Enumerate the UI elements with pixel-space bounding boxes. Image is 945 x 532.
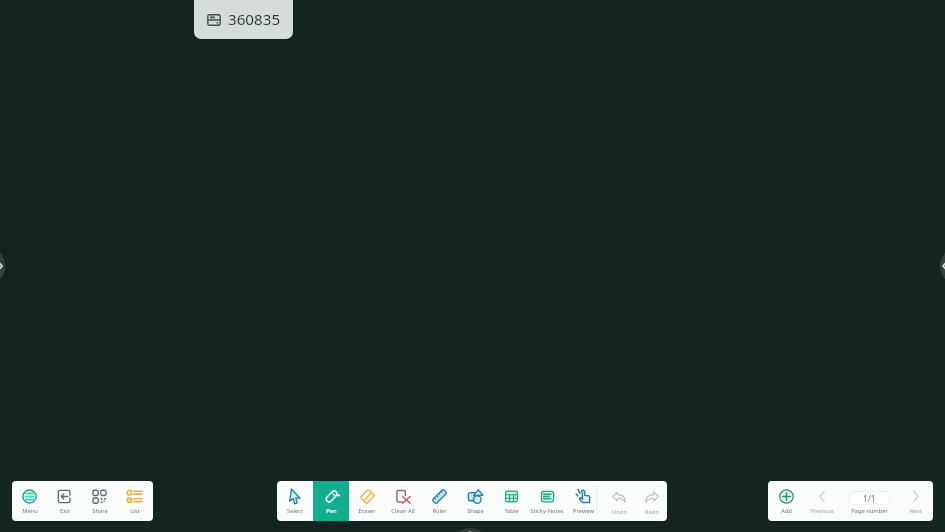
button[interactable]: Show more tools	[450, 528, 490, 532]
button[interactable]: Preview	[565, 481, 601, 521]
staticText: Table	[504, 507, 519, 515]
staticText: Add	[781, 507, 792, 515]
button[interactable]: Previous	[804, 481, 840, 521]
button[interactable]: Undo	[601, 481, 637, 521]
button[interactable]: Expand left panel	[0, 246, 5, 286]
staticText: Eraser	[358, 507, 376, 515]
button[interactable]: Table	[493, 481, 529, 521]
staticText: List	[130, 507, 140, 515]
button[interactable]: Eraser	[349, 481, 385, 521]
button[interactable]: Redo	[637, 481, 667, 521]
staticText: 360835	[228, 9, 281, 30]
staticText: Share	[92, 507, 108, 515]
button[interactable]: List	[117, 481, 152, 521]
staticText: Select	[287, 507, 303, 515]
button[interactable]: Add	[768, 481, 804, 521]
button[interactable]: Shape	[457, 481, 493, 521]
staticText: Redo	[645, 508, 659, 516]
button[interactable]: Next	[898, 481, 933, 521]
staticText: 1/1	[863, 493, 876, 504]
button[interactable]: Pen	[313, 481, 349, 521]
staticText: Ruler	[432, 507, 447, 515]
staticText: Exit	[60, 507, 70, 515]
staticText: Preview	[573, 507, 594, 515]
staticText: Pen	[326, 507, 337, 515]
button[interactable]: Clean All	[385, 481, 421, 521]
button[interactable]: Ruler	[421, 481, 457, 521]
button[interactable]: Select	[277, 481, 313, 521]
staticText: Menu	[22, 507, 38, 515]
staticText: Next	[909, 507, 922, 515]
staticText: Undo	[612, 508, 627, 516]
button[interactable]: Menu	[12, 481, 47, 521]
button[interactable]: Share	[82, 481, 117, 521]
button[interactable]: 360835	[194, 0, 293, 39]
button[interactable]: 1/1	[840, 481, 898, 521]
staticText: Sticky-Notes	[530, 507, 564, 515]
staticText: Clean All	[391, 507, 415, 515]
button[interactable]: Sticky-Notes	[529, 481, 565, 521]
staticText: Page number	[851, 507, 888, 515]
button[interactable]: Expand right panel	[940, 246, 945, 286]
staticText: Previous	[810, 507, 834, 515]
staticText: Shape	[467, 507, 484, 515]
button[interactable]: Exit	[47, 481, 82, 521]
